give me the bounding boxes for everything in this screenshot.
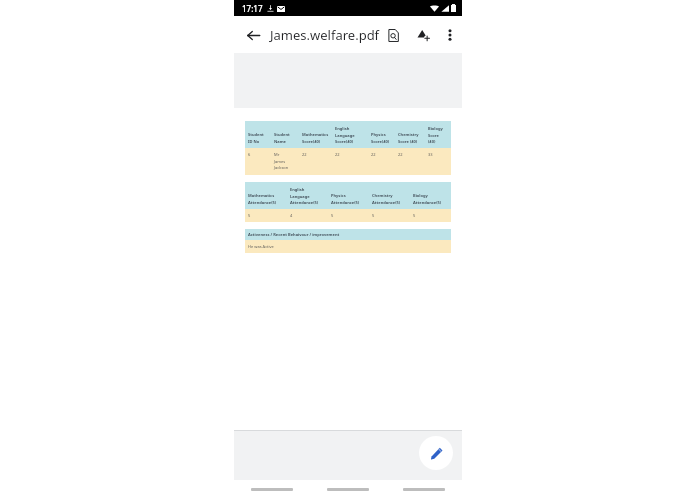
staticText: 17:17 xyxy=(242,3,263,14)
staticText: Mathematics Attendance(5) xyxy=(248,193,277,205)
staticText: English Language Attendance(5) xyxy=(290,187,319,205)
staticText: Physics Attendance(5) xyxy=(331,193,360,205)
staticText: 22 xyxy=(335,152,340,157)
button[interactable]: Navigation button xyxy=(234,480,310,494)
staticText: Biology Score (40) xyxy=(428,126,443,144)
button[interactable]: Navigation button xyxy=(386,480,462,494)
staticText: Chemistry Attendance(5) xyxy=(372,193,401,205)
staticText: 5 xyxy=(372,213,375,218)
button[interactable]: Back xyxy=(239,21,267,49)
button[interactable]: Save to Drive xyxy=(410,22,436,48)
staticText: 5 xyxy=(331,213,334,218)
button[interactable]: Edit xyxy=(419,436,453,470)
staticText: English Language Score(40) xyxy=(335,126,355,144)
staticText: 33 xyxy=(428,152,433,157)
button[interactable]: More options xyxy=(438,23,462,47)
button[interactable]: Search document xyxy=(380,22,406,48)
staticText: 5 xyxy=(248,213,251,218)
staticText: Physics Score(40) xyxy=(371,132,390,144)
staticText: Chemistry Score (40) xyxy=(398,132,419,144)
staticText: 6 xyxy=(248,152,251,157)
staticText: Mr James Jackson xyxy=(274,152,289,170)
staticText: Mathematics Score(40) xyxy=(302,132,329,144)
staticText: 22 xyxy=(371,152,376,157)
staticText: James.welfare.pdf xyxy=(270,26,380,44)
staticText: 4 xyxy=(290,213,293,218)
button[interactable]: Navigation button xyxy=(310,480,386,494)
staticText: He was Active xyxy=(248,244,274,249)
staticText: 22 xyxy=(302,152,307,157)
staticText: 5 xyxy=(413,213,416,218)
staticText: Biology Attendance(5) xyxy=(413,193,442,205)
staticText: Student ID No xyxy=(248,132,264,144)
staticText: Student Name xyxy=(274,132,290,144)
staticText: Activeness / Recent Behaivour / improvem… xyxy=(248,232,340,237)
staticText: 22 xyxy=(398,152,403,157)
